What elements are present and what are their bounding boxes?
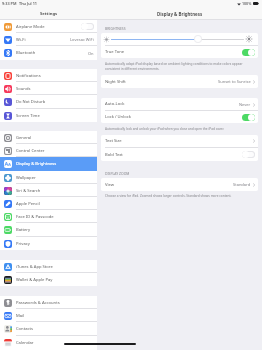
staticText: Siri & Search <box>16 188 41 194</box>
staticText: Lovesac WiFi <box>70 37 94 42</box>
button[interactable]: Face ID & Passcode <box>0 210 97 223</box>
staticText: Auto-Lock <box>105 101 125 107</box>
button[interactable]: Mail <box>0 309 97 322</box>
button[interactable]: Calendar <box>0 336 97 349</box>
staticText: Contacts <box>16 326 33 332</box>
staticText: Airplane Mode <box>16 24 45 30</box>
staticText: Battery <box>16 227 31 233</box>
staticText: Bold Text <box>105 152 123 158</box>
button[interactable]: View <box>101 178 258 191</box>
staticText: Bluetooth <box>16 50 36 56</box>
staticText: Notifications <box>16 73 41 79</box>
staticText: Apple Pencil <box>16 201 40 207</box>
button[interactable]: Control Center <box>0 144 97 157</box>
staticText: Control Center <box>16 148 45 154</box>
staticText: Automatically adapt iPad display based o… <box>105 62 258 71</box>
staticText: Sunset to Sunrise <box>218 79 251 84</box>
button[interactable]: Auto-Lock <box>101 98 258 110</box>
button[interactable]: Wallpaper <box>0 171 97 184</box>
staticText: 9:33 PM <box>2 1 17 6</box>
button[interactable]: Apple Pencil <box>0 197 97 210</box>
button[interactable]: Lock / Unlock <box>101 111 258 123</box>
staticText: On <box>88 51 94 56</box>
button[interactable]: Battery <box>0 223 97 237</box>
staticText: Display & Brightness <box>16 161 57 167</box>
button[interactable]: Bluetooth <box>0 46 97 60</box>
button[interactable]: General <box>0 131 97 144</box>
staticText: Screen Time <box>16 113 40 119</box>
button[interactable]: Switch on <box>242 49 255 56</box>
staticText: Thu Jul 11 <box>19 1 37 6</box>
staticText: Choose a view for iPad. Zoomed shows lar… <box>105 194 232 198</box>
staticText: Passwords & Accounts <box>16 300 60 306</box>
button[interactable]: Sounds <box>0 82 97 95</box>
button[interactable]: Airplane Mode <box>0 20 97 33</box>
staticText: DISPLAY ZOOM <box>105 171 130 176</box>
button[interactable]: Switch off <box>242 151 255 158</box>
staticText: Settings <box>40 11 58 17</box>
staticText: Text Size <box>105 138 122 144</box>
button[interactable]: Switch on <box>242 114 255 121</box>
button[interactable]: True Tone <box>101 46 258 58</box>
staticText: BRIGHTNESS <box>105 26 126 31</box>
staticText: True Tone <box>105 49 125 55</box>
button[interactable]: Notifications <box>0 69 97 82</box>
staticText: Never <box>239 102 251 107</box>
staticText: Do Not Disturb <box>16 99 46 105</box>
staticText: Automatically lock and unlock your iPad … <box>105 127 225 131</box>
staticText: Standard <box>233 182 251 187</box>
staticText: 100% <box>242 1 252 6</box>
staticText: Mail <box>16 313 25 319</box>
staticText: Face ID & Passcode <box>16 214 54 220</box>
button[interactable]: Text Size <box>101 135 258 147</box>
button[interactable]: Do Not Disturb <box>0 95 97 109</box>
staticText: Wallpaper <box>16 175 36 181</box>
staticText: Sounds <box>16 86 31 92</box>
button[interactable]: Siri & Search <box>0 184 97 197</box>
staticText: Wi-Fi <box>16 37 26 43</box>
staticText: Lock / Unlock <box>105 114 131 120</box>
staticText: General <box>16 135 32 141</box>
button[interactable]: Privacy <box>0 237 97 250</box>
button[interactable]: Night Shift <box>101 75 258 88</box>
button[interactable]: Switch off <box>81 23 94 30</box>
button[interactable]: Wallet & Apple Pay <box>0 273 97 286</box>
button[interactable]: Bold Text <box>101 148 258 161</box>
staticText: View <box>105 182 115 188</box>
staticText: Display & Brightness <box>157 11 203 17</box>
button[interactable]: iTunes & App Store <box>0 260 97 273</box>
button[interactable]: Wi-Fi <box>0 33 97 46</box>
staticText: Night Shift <box>105 79 126 85</box>
button[interactable]: Contacts <box>0 322 97 336</box>
staticText: Calendar <box>16 340 34 346</box>
button[interactable]: Passwords & Accounts <box>0 296 97 309</box>
staticText: Privacy <box>16 241 30 247</box>
staticText: Wallet & Apple Pay <box>16 277 53 283</box>
staticText: iTunes & App Store <box>16 264 53 270</box>
button[interactable]: Display & Brightness <box>0 157 97 171</box>
button[interactable]: Screen Time <box>0 109 97 122</box>
